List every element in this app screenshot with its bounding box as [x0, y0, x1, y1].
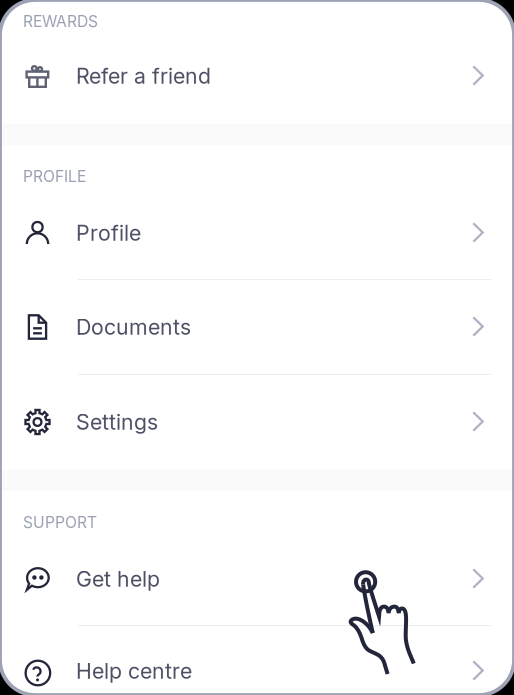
- staticText: Refer a friend: [76, 63, 211, 89]
- button[interactable]: Documents: [0, 280, 514, 374]
- staticText: Help centre: [76, 658, 192, 684]
- button[interactable]: Get help: [0, 547, 514, 625]
- button[interactable]: Profile: [0, 201, 514, 279]
- button[interactable]: Refer a friend: [0, 30, 514, 124]
- button[interactable]: Help centre: [0, 626, 514, 695]
- staticText: Get help: [76, 566, 160, 592]
- staticText: Profile: [76, 220, 141, 246]
- staticText: PROFILE: [23, 167, 86, 186]
- staticText: Settings: [76, 409, 158, 435]
- staticText: REWARDS: [23, 12, 98, 31]
- button[interactable]: Settings: [0, 375, 514, 470]
- staticText: SUPPORT: [23, 513, 97, 532]
- staticText: Documents: [76, 314, 191, 340]
